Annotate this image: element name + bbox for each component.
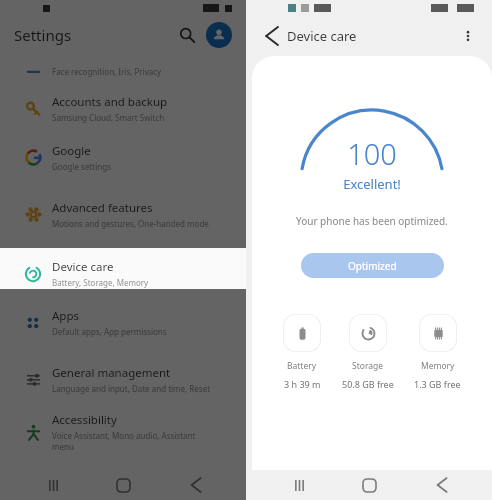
button[interactable]: Accessibility	[0, 404, 246, 460]
button[interactable]: Optimized	[301, 253, 444, 278]
staticText: Settings	[14, 25, 72, 45]
staticText: Device care	[52, 259, 114, 275]
staticText: Storage	[352, 360, 384, 372]
staticText: Language and input, Date and time, Reset	[52, 383, 211, 394]
button[interactable]: Back	[176, 470, 210, 500]
staticText: Google	[52, 143, 91, 159]
button[interactable]: Device care	[0, 249, 246, 298]
button[interactable]: Back	[254, 22, 282, 50]
button[interactable]: Home	[352, 470, 386, 500]
staticText: Face recognition, Iris, Privacy	[52, 66, 162, 77]
staticText: Memory	[421, 360, 455, 372]
staticText: Battery, Storage, Memory	[52, 277, 149, 288]
button[interactable]: Face recognition, Iris, Privacy	[0, 58, 246, 84]
staticText: Accounts and backup	[52, 94, 168, 110]
staticText: Advanced features	[52, 200, 153, 216]
button[interactable]: Account	[206, 22, 232, 48]
staticText: Your phone has been optimized.	[296, 214, 448, 228]
staticText: 3 h 39 m	[284, 378, 321, 390]
button[interactable]: Recents	[36, 470, 70, 500]
button[interactable]: Google	[0, 133, 246, 182]
staticText: Default apps, App permissions	[52, 326, 167, 337]
button[interactable]: Battery	[279, 314, 325, 390]
button[interactable]: Home	[106, 470, 140, 500]
staticText: Device care	[287, 27, 357, 45]
staticText: 50.8 GB free	[342, 378, 394, 390]
staticText: General management	[52, 365, 171, 381]
staticText: Voice Assistant, Mono audio, Assistant m…	[52, 430, 196, 452]
button[interactable]: Apps	[0, 298, 246, 347]
button[interactable]: General management	[0, 355, 246, 404]
button[interactable]: Storage	[338, 314, 398, 390]
button[interactable]: More options	[454, 22, 482, 50]
staticText: Optimized	[348, 259, 397, 273]
staticText: Motions and gestures, One-handed mode	[52, 218, 209, 229]
staticText: Apps	[52, 308, 80, 324]
button[interactable]: Back	[422, 470, 456, 500]
button[interactable]: Accounts and backup	[0, 84, 246, 133]
button[interactable]: Recents	[282, 470, 316, 500]
staticText: Samsung Cloud, Smart Switch	[52, 112, 165, 123]
button[interactable]: Advanced features	[0, 190, 246, 239]
staticText: 100	[347, 134, 397, 173]
staticText: Excellent!	[343, 175, 401, 193]
button[interactable]: Search	[174, 22, 200, 48]
staticText: 1.3 GB free	[414, 378, 461, 390]
staticText: Accessibility	[52, 412, 117, 428]
button[interactable]: Memory	[410, 314, 465, 390]
staticText: Battery	[287, 360, 317, 372]
staticText: Google settings	[52, 161, 111, 172]
